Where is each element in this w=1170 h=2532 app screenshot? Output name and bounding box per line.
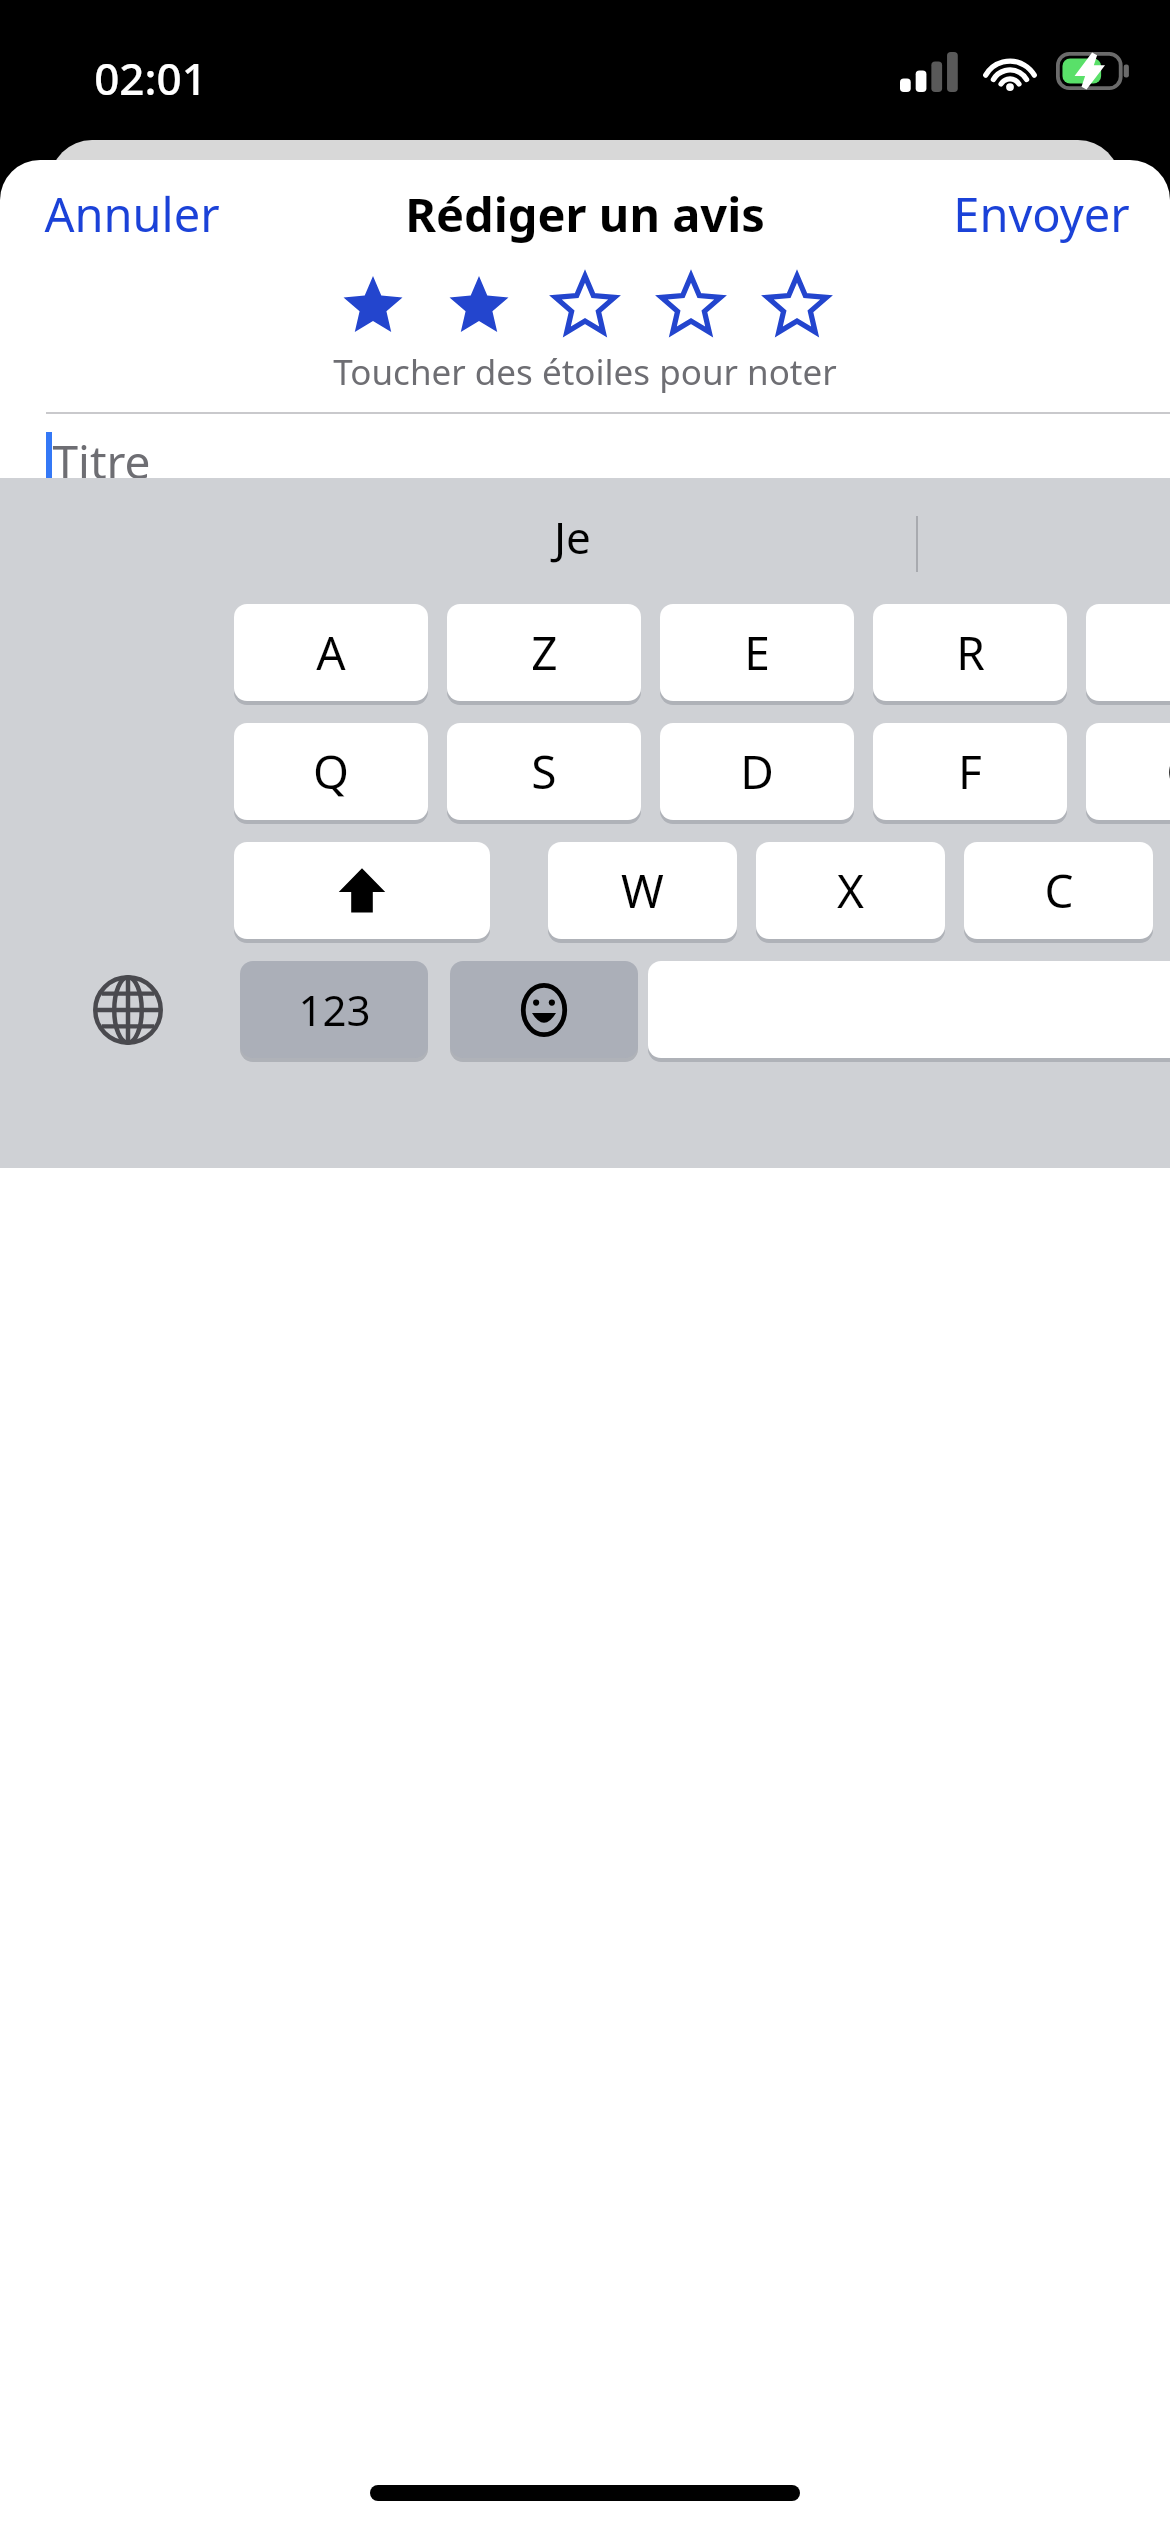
staticText: Titre <box>52 430 151 493</box>
button[interactable]: Je <box>514 489 631 585</box>
staticText: C <box>1044 859 1074 922</box>
button[interactable]: Titre <box>0 414 1170 544</box>
button[interactable]: R <box>873 604 1067 701</box>
staticText: S <box>531 740 557 803</box>
staticText: G <box>1166 740 1170 803</box>
button[interactable]: Noter 2 étoile <box>426 268 532 346</box>
button[interactable]: Noter 4 étoile <box>638 268 744 346</box>
button[interactable]: Noter 5 étoile <box>744 268 850 346</box>
button[interactable]: Z <box>447 604 641 701</box>
staticText: E <box>744 621 770 684</box>
button[interactable]: 123 <box>240 961 428 1058</box>
staticText: X <box>837 859 864 922</box>
staticText: A <box>316 621 346 684</box>
staticText: Toucher des étoiles pour noter <box>333 348 837 396</box>
button[interactable]: S <box>447 723 641 820</box>
button[interactable]: Changer de clavier <box>78 961 178 1058</box>
staticText: Je <box>554 507 591 567</box>
button[interactable]: G <box>1086 723 1170 820</box>
staticText: Rédiger un avis <box>405 182 765 246</box>
staticText: Envoyer <box>953 182 1130 246</box>
staticText: Annuler <box>44 182 220 246</box>
button[interactable]: F <box>873 723 1067 820</box>
staticText: 123 <box>298 981 371 1038</box>
staticText: Z <box>531 621 558 684</box>
staticText: D <box>740 740 774 803</box>
button[interactable]: A <box>234 604 428 701</box>
staticText: W <box>621 859 664 922</box>
button[interactable]: C <box>964 842 1153 939</box>
button[interactable]: Annuler <box>22 168 242 260</box>
staticText: 02:01 <box>94 48 207 108</box>
button[interactable]: Q <box>234 723 428 820</box>
staticText: F <box>958 740 982 803</box>
button[interactable]: Majuscule <box>234 842 490 939</box>
button[interactable]: Noter 1 étoile <box>320 268 426 346</box>
button[interactable]: T <box>1086 604 1170 701</box>
button[interactable]: E <box>660 604 854 701</box>
staticText: Q <box>313 740 349 803</box>
button[interactable]: W <box>548 842 737 939</box>
button[interactable]: D <box>660 723 854 820</box>
button[interactable]: Emoji <box>450 961 638 1058</box>
button[interactable]: Envoyer <box>935 168 1148 260</box>
button[interactable]: Noter 3 étoile <box>532 268 638 346</box>
button[interactable]: X <box>756 842 945 939</box>
staticText: R <box>956 621 985 684</box>
